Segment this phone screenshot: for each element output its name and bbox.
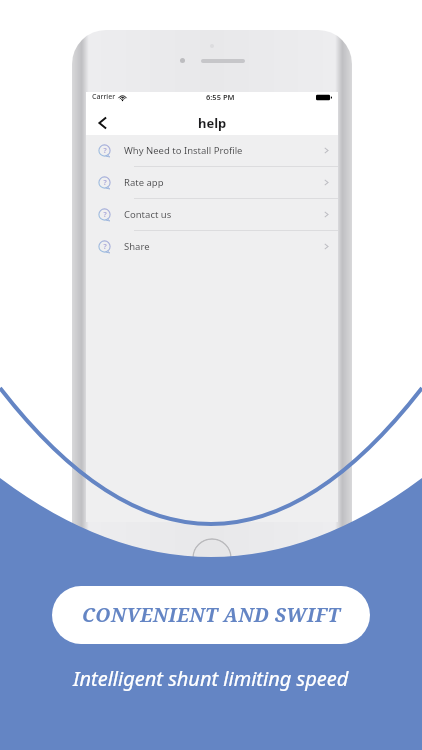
staticText: Intelligent shunt limiting speed (73, 665, 349, 692)
staticText: 6:55 PM (206, 92, 235, 102)
staticText: Contact us (124, 208, 172, 221)
staticText: Share (124, 240, 150, 253)
staticText: Why Need to Install Profile (124, 144, 243, 157)
staticText: help (198, 114, 227, 132)
staticText: ? (103, 210, 107, 220)
staticText: CONVENIENT AND SWIFT (82, 602, 341, 628)
button[interactable]: CONVENIENT AND SWIFT (52, 586, 370, 644)
button[interactable]: ? (86, 135, 338, 166)
staticText: Carrier (92, 92, 116, 102)
staticText: ? (103, 146, 107, 156)
button[interactable]: ? (86, 231, 338, 262)
staticText: ? (103, 242, 107, 252)
button[interactable]: Back (91, 111, 115, 135)
button[interactable]: ? (86, 167, 338, 198)
staticText: Rate app (124, 176, 164, 189)
staticText: ? (103, 178, 107, 188)
button[interactable]: ? (86, 199, 338, 230)
